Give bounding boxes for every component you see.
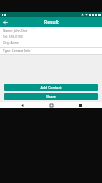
staticText: Share <box>46 94 56 99</box>
button[interactable]: Share <box>4 93 98 100</box>
button[interactable]: Recent apps <box>73 102 87 108</box>
staticText: Org: Acme <box>3 41 19 45</box>
staticText: Name: John Doe <box>3 29 28 33</box>
staticText: Result <box>44 19 59 26</box>
staticText: Add Contact <box>40 85 62 90</box>
staticText: Tel: 555-0100 <box>3 35 23 39</box>
button[interactable]: Back <box>15 102 29 108</box>
button[interactable]: Home <box>44 102 58 108</box>
staticText: Type: Contact Info <box>3 49 31 53</box>
button[interactable]: Add Contact <box>4 84 98 91</box>
button[interactable]: Navigate up <box>0 17 10 27</box>
